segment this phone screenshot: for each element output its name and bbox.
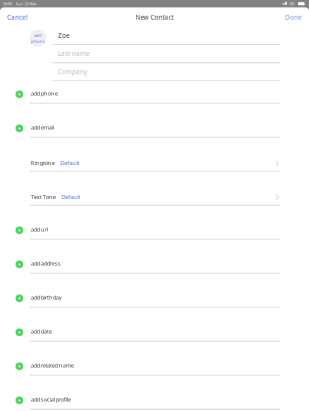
staticText: add — [34, 32, 42, 38]
button[interactable]: add phone — [0, 81, 309, 104]
staticText: Ringtone — [31, 159, 55, 167]
button[interactable]: add social profile — [0, 376, 309, 410]
staticText: 10:00 — [3, 1, 12, 6]
staticText: add related name — [31, 361, 74, 369]
staticText: add address — [31, 259, 61, 267]
staticText: Last name — [58, 49, 90, 58]
staticText: Default — [60, 159, 79, 167]
button[interactable]: add — [29, 30, 46, 47]
staticText: add email — [31, 123, 54, 131]
staticText: add social profile — [31, 395, 71, 403]
staticText: Done — [285, 13, 302, 21]
staticText: add phone — [31, 89, 58, 97]
button[interactable]: Cancel — [0, 9, 32, 25]
button[interactable]: add email — [0, 104, 309, 138]
staticText: add date — [31, 327, 52, 335]
button[interactable]: Text Tone — [0, 172, 309, 206]
staticText: Cancel — [7, 13, 28, 21]
staticText: add birthday — [31, 293, 62, 301]
staticText: add url — [31, 225, 48, 233]
staticText: Default — [61, 193, 80, 201]
staticText: Sun 25 Nov — [15, 1, 36, 6]
staticText: Text Tone — [31, 193, 56, 201]
staticText: New Contact — [135, 13, 173, 21]
button[interactable]: Ringtone — [0, 138, 309, 172]
staticText: Company — [58, 67, 87, 76]
staticText: 3G — [289, 1, 294, 6]
staticText: photo — [31, 38, 45, 44]
button[interactable]: add url — [0, 206, 309, 240]
button[interactable]: add address — [0, 240, 309, 274]
button[interactable]: Done — [281, 9, 309, 25]
button[interactable]: add birthday — [0, 274, 309, 308]
button[interactable]: add related name — [0, 342, 309, 376]
button[interactable]: add date — [0, 308, 309, 342]
staticText: Zoe — [58, 31, 70, 40]
